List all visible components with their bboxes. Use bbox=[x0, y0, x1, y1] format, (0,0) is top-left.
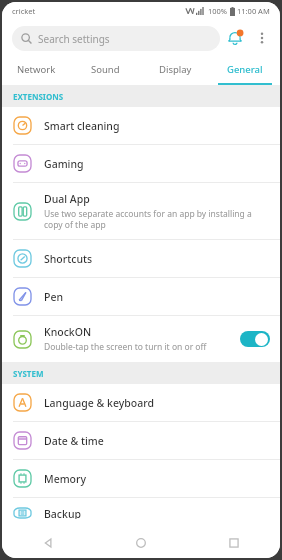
button[interactable]: Back bbox=[2, 528, 94, 558]
staticText: Use two separate accounts for an app by … bbox=[44, 208, 270, 230]
staticText: SYSTEM bbox=[13, 368, 44, 379]
staticText: 100% bbox=[208, 6, 228, 16]
button[interactable]: Network bbox=[2, 56, 71, 83]
staticText: Date & time bbox=[44, 434, 104, 448]
staticText: Language & keyboard bbox=[44, 396, 154, 410]
staticText: Search settings bbox=[38, 32, 110, 46]
button[interactable]: Date & time bbox=[2, 422, 280, 459]
button[interactable]: KnockON bbox=[2, 316, 280, 362]
staticText: Gaming bbox=[44, 157, 84, 171]
staticText: Double-tap the screen to turn it on or o… bbox=[44, 341, 207, 353]
button[interactable]: Language & keyboard bbox=[2, 384, 280, 421]
button[interactable]: Recents bbox=[187, 528, 280, 558]
button[interactable]: Notifications bbox=[220, 23, 250, 53]
button[interactable]: Smart cleaning bbox=[2, 107, 280, 144]
staticText: General bbox=[227, 63, 263, 76]
button[interactable]: Search settings bbox=[12, 26, 220, 51]
staticText: Sound bbox=[91, 63, 120, 76]
button[interactable]: Home bbox=[94, 528, 187, 558]
button[interactable]: Gaming bbox=[2, 145, 280, 182]
staticText: Network bbox=[17, 63, 56, 76]
staticText: 11:00 AM bbox=[237, 6, 270, 16]
button[interactable]: Sound bbox=[71, 56, 140, 83]
button[interactable]: More options bbox=[250, 26, 274, 50]
staticText: EXTENSIONS bbox=[13, 91, 64, 102]
button[interactable]: Shortcuts bbox=[2, 240, 280, 277]
staticText: cricket bbox=[12, 6, 36, 16]
staticText: Backup bbox=[44, 507, 81, 519]
button[interactable]: Backup bbox=[2, 498, 280, 528]
staticText: Dual App bbox=[44, 192, 90, 206]
staticText: Smart cleaning bbox=[44, 119, 120, 133]
button[interactable]: General bbox=[210, 56, 280, 83]
button[interactable]: KnockON toggle bbox=[240, 331, 270, 347]
button[interactable]: Dual App bbox=[2, 183, 280, 239]
button[interactable]: Display bbox=[140, 56, 210, 83]
staticText: Memory bbox=[44, 472, 87, 486]
button[interactable]: Memory bbox=[2, 460, 280, 497]
button[interactable]: Pen bbox=[2, 278, 280, 315]
staticText: Display bbox=[159, 63, 192, 76]
staticText: KnockON bbox=[44, 325, 92, 339]
staticText: Shortcuts bbox=[44, 252, 93, 266]
staticText: Pen bbox=[44, 290, 64, 304]
